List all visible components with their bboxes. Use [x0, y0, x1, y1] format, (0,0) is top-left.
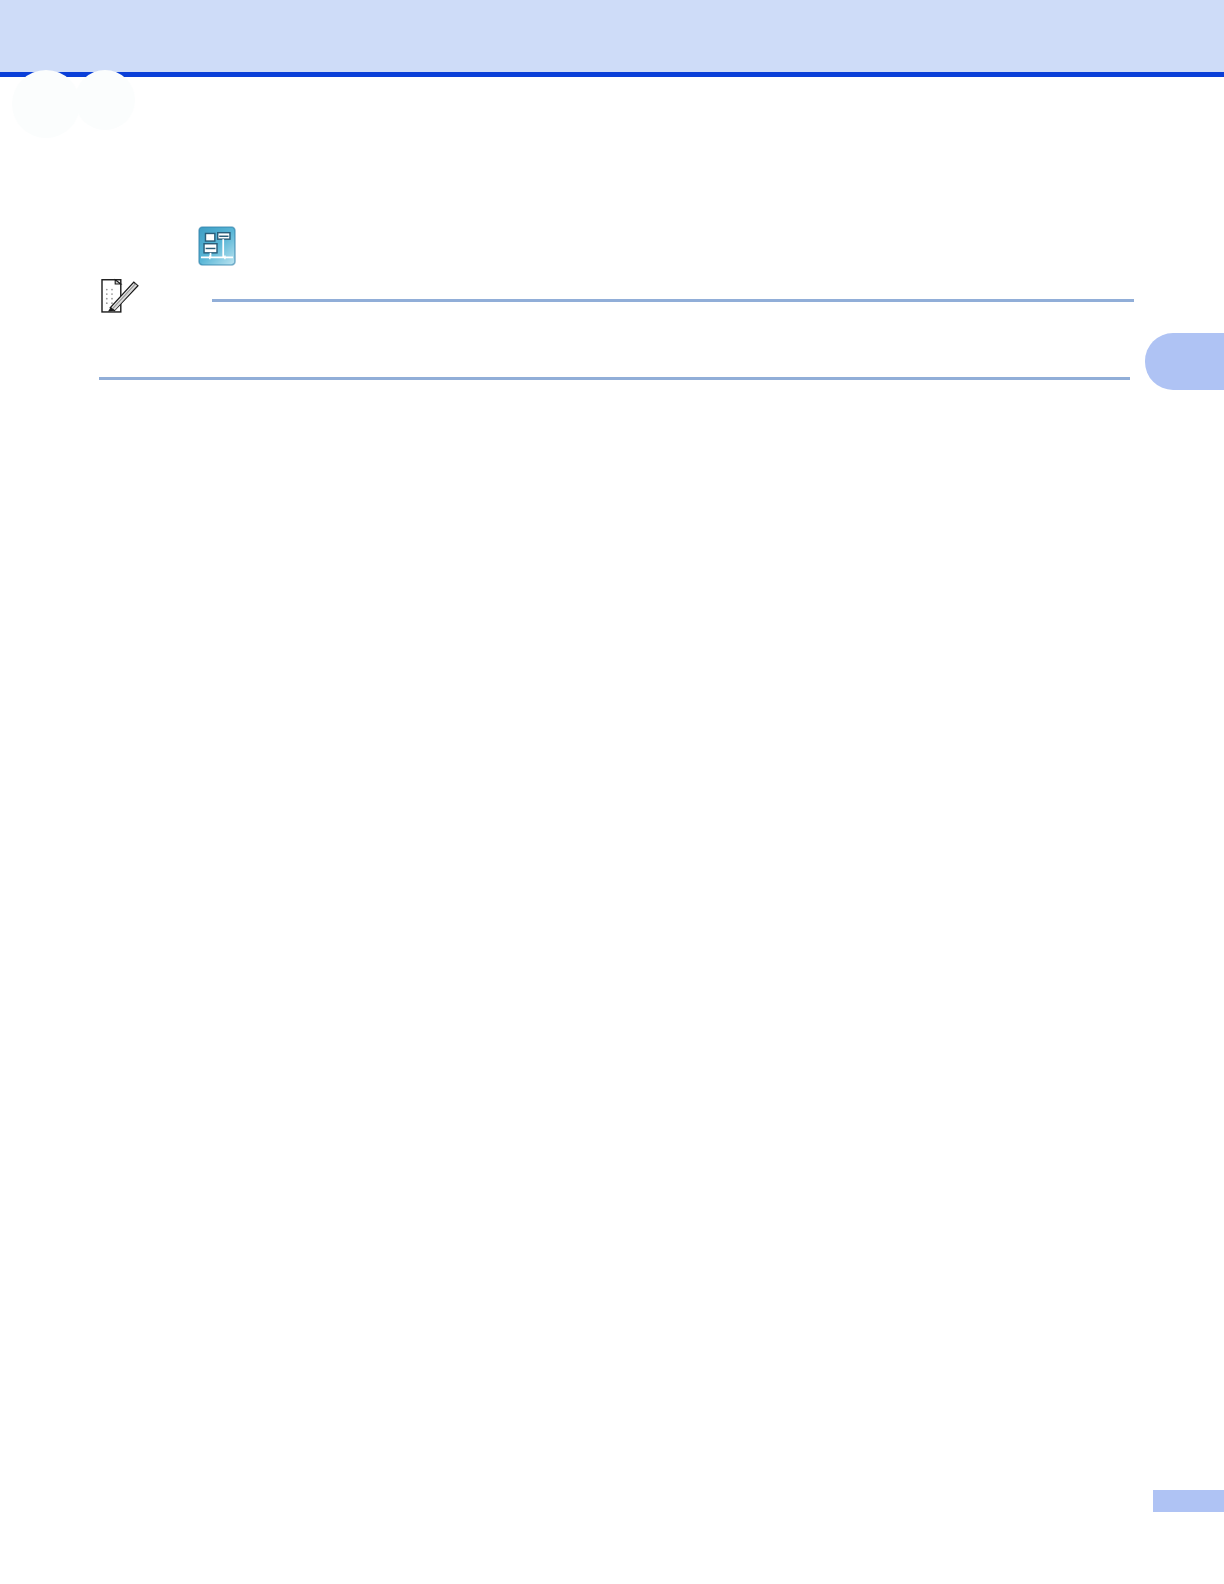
button[interactable]: Chapter tab	[1145, 333, 1224, 390]
other: Note	[100, 278, 140, 313]
button[interactable]: Network printer sharing	[199, 227, 235, 265]
